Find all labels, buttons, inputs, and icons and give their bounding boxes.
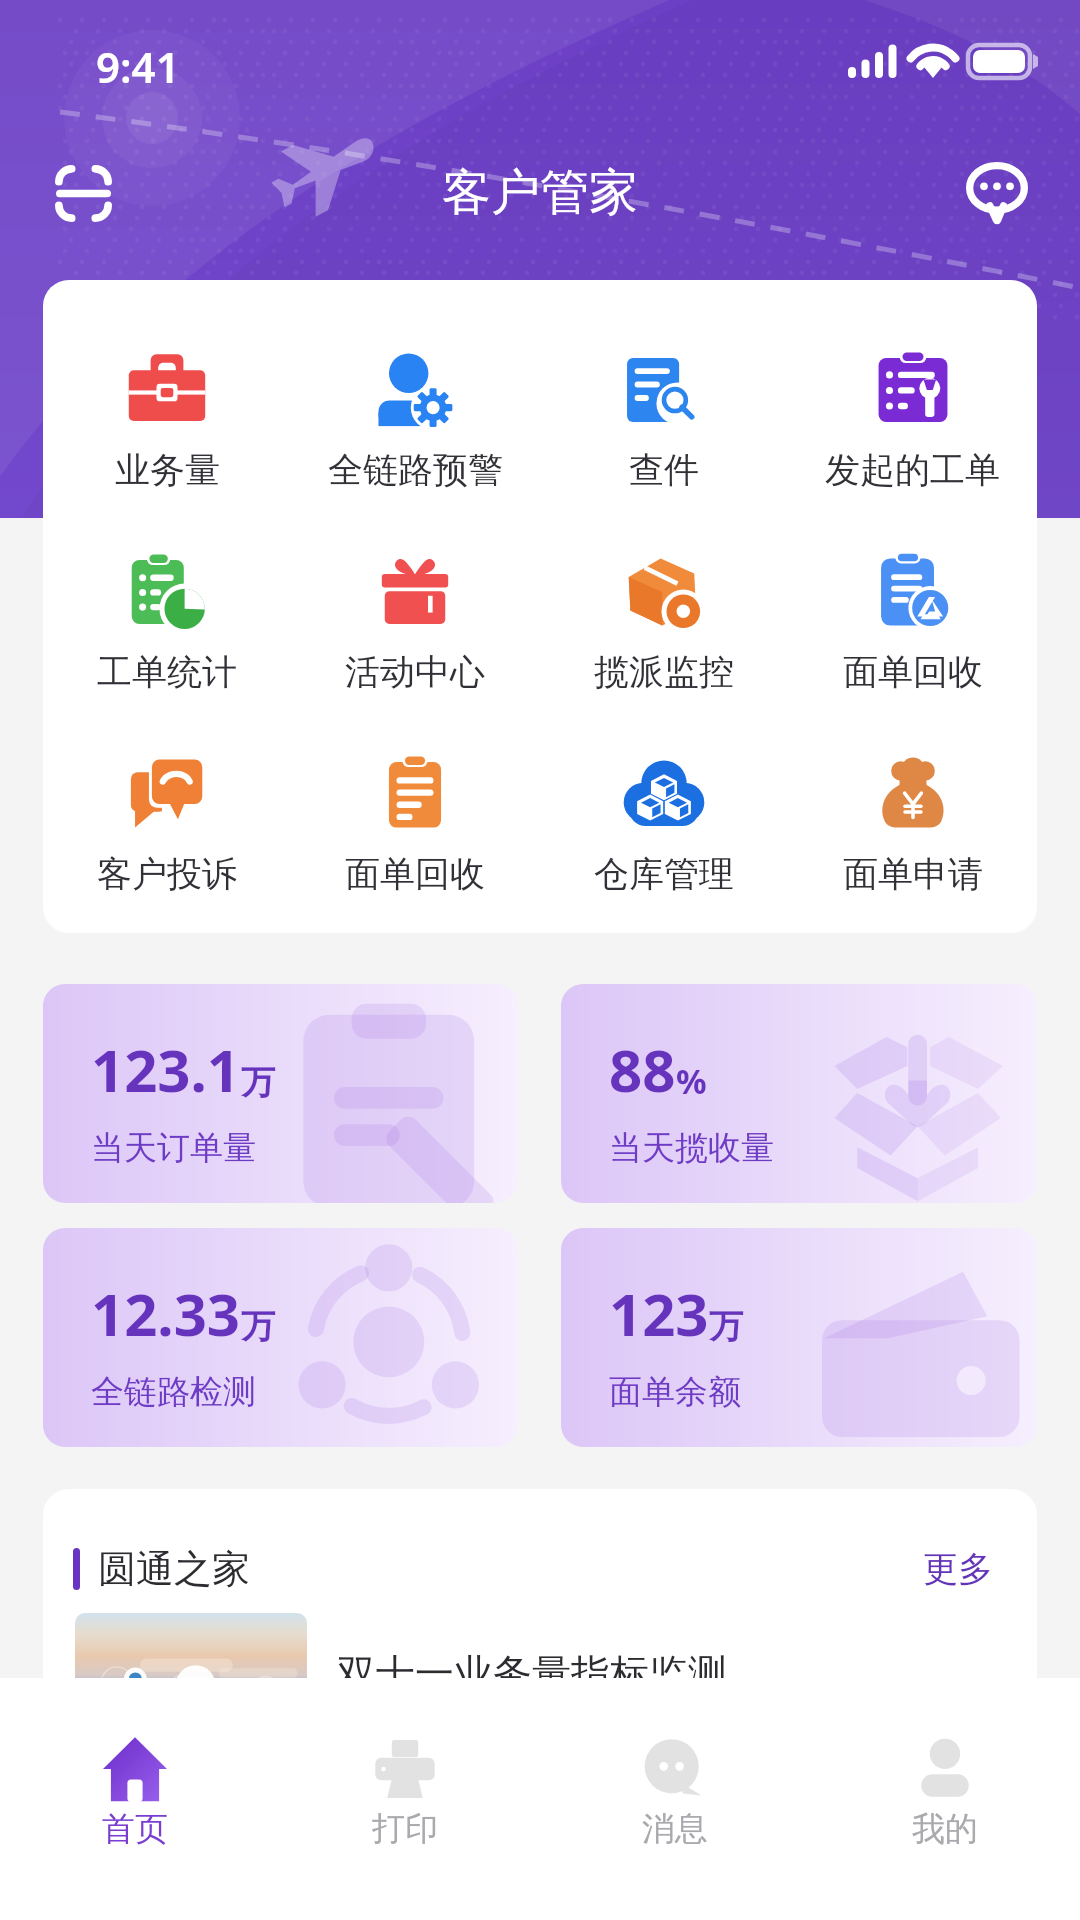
button[interactable]: 更多 (917, 1541, 999, 1597)
button[interactable]: 面单回收 (788, 550, 1037, 694)
button[interactable]: 面单回收 (291, 752, 539, 896)
button[interactable]: 面单申请 (788, 752, 1037, 896)
staticText: 面单申请 (843, 852, 983, 896)
staticText: 查件 (629, 448, 699, 492)
staticText: 123 (609, 1274, 709, 1353)
staticText: 工单统计 (97, 650, 237, 694)
staticText: 万 (709, 1305, 743, 1348)
staticText: 万 (241, 1061, 275, 1104)
staticText: 88 (609, 1030, 676, 1109)
button[interactable]: 客户投诉 (43, 752, 291, 896)
staticText: 当天订单量 (91, 1127, 256, 1169)
button[interactable]: Scan code (38, 148, 128, 238)
button[interactable]: 88 (561, 984, 1037, 1203)
staticText: 客户投诉 (97, 852, 237, 896)
button[interactable]: 活动中心 (291, 550, 539, 694)
staticText: 圆通之家 (98, 1545, 250, 1593)
staticText: 面单回收 (345, 852, 485, 896)
button[interactable]: 首页 (0, 1678, 270, 1850)
button[interactable]: 消息 (540, 1678, 810, 1850)
button[interactable]: 打印 (270, 1678, 540, 1850)
staticText: 活动中心 (345, 650, 485, 694)
button[interactable]: 工单统计 (43, 550, 291, 694)
button[interactable]: 12.33 (43, 1228, 518, 1447)
staticText: 业务量 (115, 448, 220, 492)
staticText: 全链路检测 (91, 1371, 256, 1413)
staticText: 我的 (912, 1808, 978, 1850)
staticText: 更多 (923, 1547, 993, 1591)
staticText: % (676, 1058, 707, 1104)
staticText: 万 (241, 1305, 275, 1348)
staticText: 9:41 (96, 38, 180, 95)
staticText: 客户管家 (442, 162, 638, 224)
staticText: 面单余额 (609, 1371, 741, 1413)
staticText: 仓库管理 (594, 852, 734, 896)
staticText: 12.33 (91, 1274, 241, 1353)
staticText: 揽派监控 (594, 650, 734, 694)
staticText: 123.1 (91, 1030, 241, 1109)
staticText: 发起的工单 (825, 448, 1000, 492)
staticText: 面单回收 (843, 650, 983, 694)
staticText: 全链路预警 (328, 448, 503, 492)
staticText: 消息 (642, 1808, 708, 1850)
staticText: 当天揽收量 (609, 1127, 774, 1169)
button[interactable]: Messages (952, 148, 1042, 238)
button[interactable]: 123 (561, 1228, 1037, 1447)
button[interactable]: 揽派监控 (539, 550, 788, 694)
staticText: 打印 (372, 1808, 438, 1850)
button[interactable]: 查件 (539, 348, 788, 492)
button[interactable]: 123.1 (43, 984, 518, 1203)
button[interactable]: 全链路预警 (291, 348, 539, 492)
button[interactable]: 我的 (810, 1678, 1080, 1850)
button[interactable]: 发起的工单 (788, 348, 1037, 492)
staticText: 双十一业务量指标监测 (337, 1649, 727, 1698)
staticText: 首页 (102, 1808, 168, 1850)
button[interactable]: 双十一业务量指标监测 (43, 1613, 1037, 1733)
button[interactable]: 仓库管理 (539, 752, 788, 896)
button[interactable]: 业务量 (43, 348, 291, 492)
